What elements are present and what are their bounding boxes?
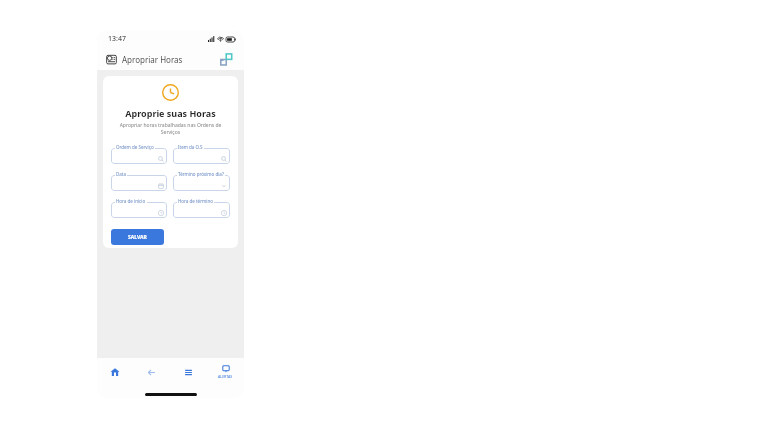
button[interactable]: Menu: [170, 358, 207, 386]
button[interactable]: Item da O.S: [173, 144, 230, 164]
staticText: Hora de término: [178, 198, 213, 204]
button[interactable]: Término próximo dia?: [173, 171, 230, 191]
button[interactable]: Data: [111, 171, 167, 191]
staticText: SALVAR: [128, 234, 147, 241]
staticText: Apropriar horas trabalhadas nas Ordens d…: [111, 122, 230, 136]
button[interactable]: SALVAR: [111, 229, 164, 245]
button[interactable]: Ordem de Serviço: [111, 144, 167, 164]
staticText: Item da O.S: [178, 144, 203, 150]
staticText: ALERTAS: [218, 374, 233, 379]
button[interactable]: Modules: [217, 50, 235, 68]
staticText: Aproprie suas Horas: [111, 107, 230, 119]
staticText: 13:47: [108, 34, 126, 44]
staticText: Término próximo dia?: [178, 171, 224, 177]
button[interactable]: Back: [133, 358, 170, 386]
button[interactable]: Hora de início: [111, 198, 167, 218]
staticText: Data: [116, 171, 126, 177]
button[interactable]: Home: [97, 358, 133, 386]
button[interactable]: ALERTAS: [207, 358, 244, 386]
button[interactable]: Hora de término: [173, 198, 230, 218]
staticText: Hora de início: [116, 198, 146, 204]
staticText: Apropriar Horas: [122, 54, 183, 65]
staticText: Ordem de Serviço: [116, 144, 154, 150]
